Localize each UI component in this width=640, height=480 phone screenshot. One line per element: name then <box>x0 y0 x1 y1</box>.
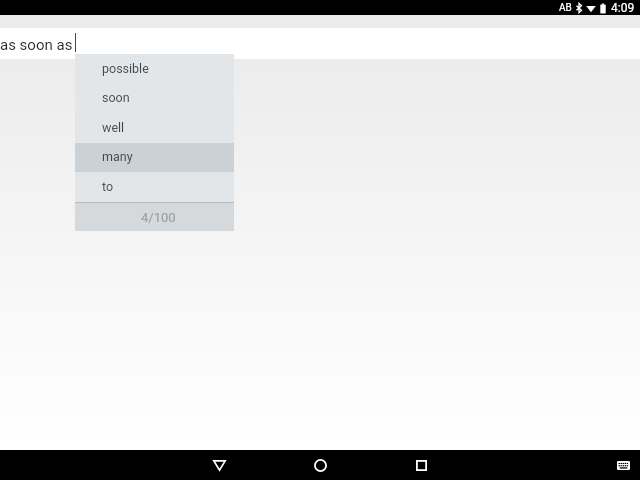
button[interactable]: possible <box>75 54 234 84</box>
staticText: many <box>102 149 133 164</box>
button[interactable]: Recent apps <box>401 450 441 480</box>
staticText: as soon as <box>0 36 73 54</box>
staticText: well <box>102 120 125 135</box>
button[interactable]: Change keyboard <box>603 450 640 480</box>
button[interactable]: well <box>75 113 234 143</box>
staticText: to <box>102 179 114 194</box>
button[interactable]: as soon as <box>0 28 640 59</box>
button[interactable]: 4/100 <box>75 203 234 231</box>
staticText: 4/100 <box>141 210 176 225</box>
staticText: 4:09 <box>611 1 635 15</box>
staticText: AB <box>559 2 572 14</box>
button[interactable]: soon <box>75 84 234 113</box>
button[interactable]: Home <box>300 450 340 480</box>
button[interactable]: to <box>75 172 234 202</box>
staticText: soon <box>102 90 130 105</box>
staticText: possible <box>102 61 149 76</box>
button[interactable]: Back <box>199 450 239 480</box>
button[interactable]: many <box>75 143 234 172</box>
